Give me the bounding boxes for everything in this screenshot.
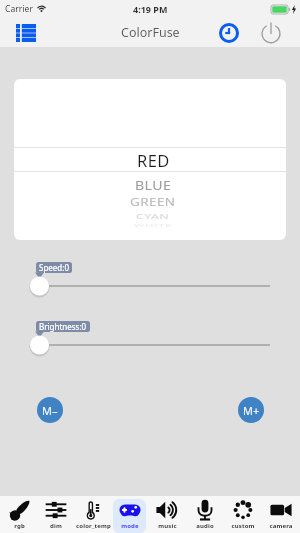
- staticText: M–: [42, 403, 58, 418]
- staticText: GREEN: [130, 195, 176, 209]
- staticText: dim: [50, 522, 62, 530]
- staticText: music: [158, 522, 177, 530]
- staticText: Carrier: [5, 3, 33, 15]
- staticText: Brightness:0: [39, 321, 87, 332]
- button[interactable]: Brightness:0: [36, 321, 90, 332]
- staticText: WHITE: [134, 223, 172, 228]
- button[interactable]: rgb: [2, 499, 35, 533]
- button[interactable]: color_temp: [76, 499, 109, 533]
- staticText: Speed:0: [39, 262, 69, 273]
- staticText: rgb: [14, 522, 25, 530]
- button[interactable]: camera: [264, 499, 298, 533]
- button[interactable]: custom: [226, 499, 260, 533]
- button[interactable]: M+: [238, 397, 264, 423]
- staticText: ColorFuse: [121, 24, 180, 41]
- staticText: BLUE: [135, 176, 172, 193]
- staticText: audio: [196, 522, 214, 530]
- staticText: custom: [231, 522, 255, 530]
- staticText: RED: [137, 149, 170, 171]
- staticText: mode: [121, 522, 139, 530]
- button[interactable]: Menu: [16, 24, 36, 42]
- button[interactable]: audio: [188, 499, 222, 533]
- staticText: color_temp: [76, 522, 109, 530]
- staticText: CYAN: [136, 212, 170, 221]
- button[interactable]: dim: [39, 499, 72, 533]
- button[interactable]: mode: [113, 499, 146, 533]
- button[interactable]: Speed:0: [36, 262, 72, 273]
- button[interactable]: Timer: [219, 23, 239, 43]
- staticText: M+: [243, 403, 260, 418]
- button[interactable]: Power: [261, 23, 281, 43]
- button[interactable]: music: [150, 499, 184, 533]
- button[interactable]: M–: [37, 397, 63, 423]
- staticText: 4:19 PM: [133, 3, 168, 15]
- staticText: camera: [269, 522, 293, 530]
